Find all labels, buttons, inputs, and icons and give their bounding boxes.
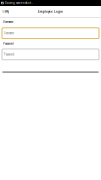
staticText: Username — [4, 31, 14, 35]
staticText: Password — [3, 42, 13, 45]
staticText: Username — [3, 20, 13, 24]
staticText: Config — [2, 10, 8, 13]
staticText: Saving screenshot… — [5, 1, 33, 5]
button[interactable]: Password — [2, 49, 99, 60]
button[interactable]: Config — [0, 6, 10, 17]
staticText: Password — [4, 53, 14, 56]
button[interactable]: Username — [2, 28, 99, 39]
staticText: Employee Login — [38, 9, 63, 14]
